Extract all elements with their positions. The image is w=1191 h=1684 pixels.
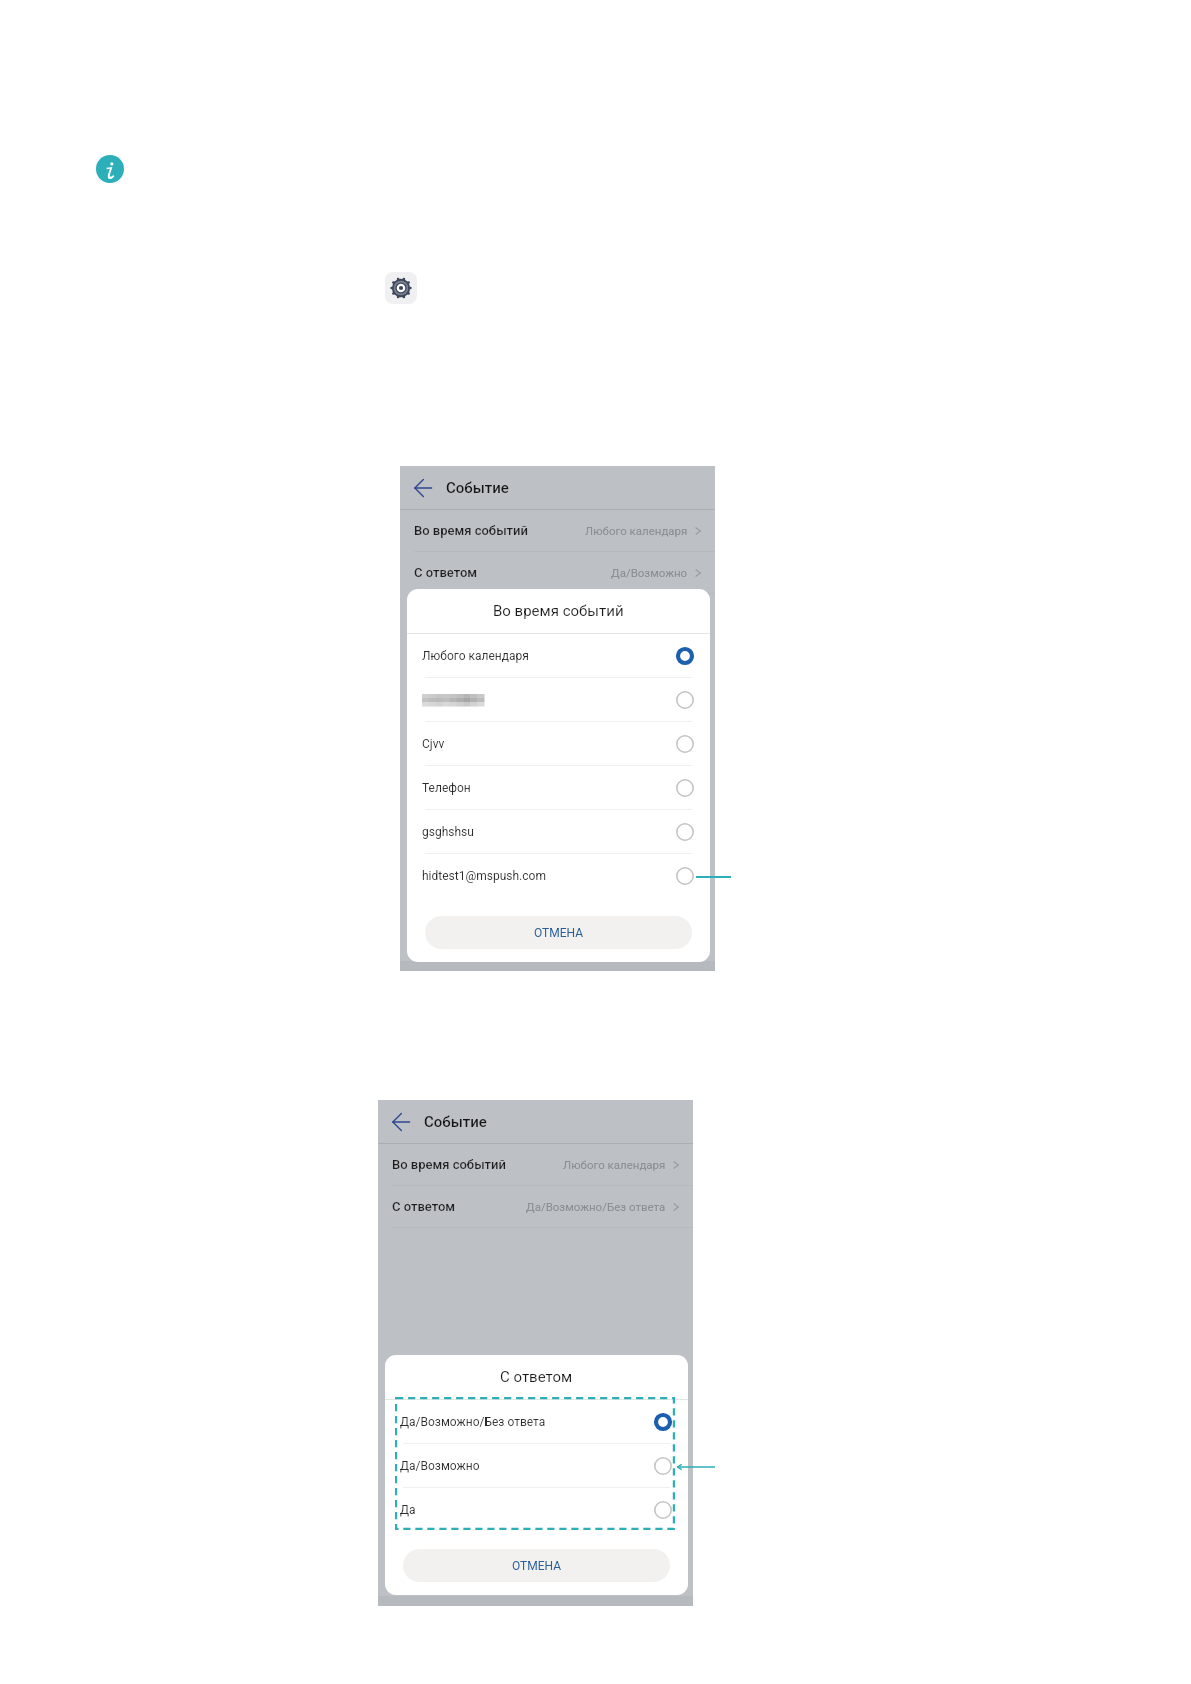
button[interactable]: Во время событий — [400, 510, 715, 551]
staticText: Да/Возможно/Без ответа — [400, 1415, 546, 1429]
button[interactable] — [407, 678, 710, 722]
button[interactable]: Back — [400, 466, 715, 509]
button[interactable]: hidtest1@mspush.com — [407, 854, 710, 898]
button[interactable]: ОТМЕНА — [403, 1549, 670, 1582]
staticText: Любого календаря — [585, 524, 688, 537]
staticText: Да/Возможно/Без ответа — [526, 1200, 666, 1213]
button[interactable]: Да/Возможно — [385, 1444, 688, 1488]
staticText: hidtest1@mspush.com — [422, 869, 546, 883]
button[interactable]: Любого календаря — [407, 634, 710, 678]
staticText: С ответом — [414, 565, 478, 580]
staticText: Телефон — [422, 781, 471, 795]
staticText: С ответом — [392, 1199, 456, 1214]
staticText: ОТМЕНА — [512, 1559, 562, 1573]
button[interactable]: Да/Возможно/Без ответа — [385, 1400, 688, 1444]
button[interactable]: Cjvv — [407, 722, 710, 766]
staticText: Да — [400, 1503, 416, 1517]
button[interactable]: Телефон — [407, 766, 710, 810]
button[interactable]: Да — [385, 1488, 688, 1532]
button[interactable]: Settings — [385, 272, 417, 304]
staticText: Любого календаря — [563, 1158, 666, 1171]
staticText: Да/Возможно — [611, 566, 688, 579]
button[interactable]: С ответом — [400, 552, 715, 593]
staticText: Событие — [424, 1113, 487, 1131]
staticText: Да/Возможно — [400, 1459, 480, 1473]
staticText: Любого календаря — [422, 649, 529, 663]
staticText: Во время событий — [414, 523, 528, 538]
staticText: Во время событий — [493, 602, 624, 620]
staticText: Cjvv — [422, 737, 445, 751]
button[interactable]: Information — [96, 155, 124, 183]
staticText: ОТМЕНА — [534, 926, 584, 940]
button[interactable]: ОТМЕНА — [425, 916, 692, 949]
staticText: Событие — [446, 479, 509, 497]
staticText: gsghshsu — [422, 825, 474, 839]
button[interactable]: Back — [378, 1100, 693, 1143]
button[interactable]: Во время событий — [378, 1144, 693, 1185]
staticText: Во время событий — [392, 1157, 506, 1172]
other: Back — [414, 479, 432, 497]
button[interactable]: С ответом — [378, 1186, 693, 1227]
button[interactable]: gsghshsu — [407, 810, 710, 854]
staticText: С ответом — [500, 1368, 573, 1386]
other: Back — [392, 1113, 410, 1131]
